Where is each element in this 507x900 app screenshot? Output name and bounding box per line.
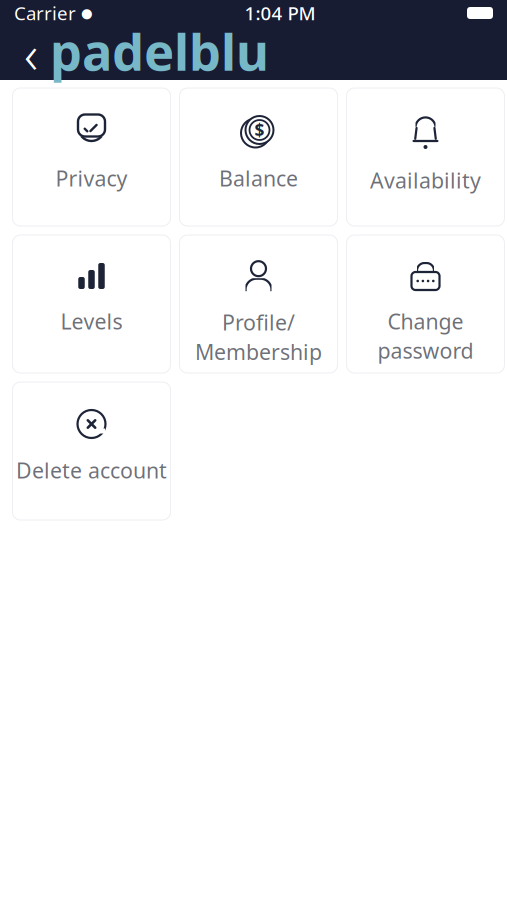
- staticText: Delete account: [16, 456, 167, 484]
- button[interactable]: Privacy: [12, 88, 170, 226]
- staticText: padelblu: [50, 17, 269, 85]
- button[interactable]: $: [179, 88, 337, 226]
- button[interactable]: Back: [12, 29, 50, 77]
- staticText: 1:04 PM: [244, 1, 315, 25]
- staticText: $: [254, 118, 264, 141]
- button[interactable]: Levels: [12, 235, 170, 373]
- button[interactable]: Profile/: [179, 235, 337, 373]
- button[interactable]: Availability: [346, 88, 504, 226]
- staticText: password: [377, 336, 473, 365]
- staticText: Change: [387, 307, 463, 335]
- staticText: Balance: [219, 164, 298, 192]
- staticText: Membership: [195, 337, 322, 366]
- staticText: Availability: [370, 166, 481, 194]
- staticText: ●: [81, 5, 93, 20]
- staticText: ‹: [24, 18, 38, 88]
- staticText: Levels: [60, 307, 122, 335]
- button[interactable]: Delete account: [12, 382, 170, 520]
- staticText: Carrier: [14, 1, 76, 25]
- staticText: Profile/: [222, 308, 295, 336]
- staticText: Privacy: [55, 164, 127, 192]
- button[interactable]: Change: [346, 235, 504, 373]
